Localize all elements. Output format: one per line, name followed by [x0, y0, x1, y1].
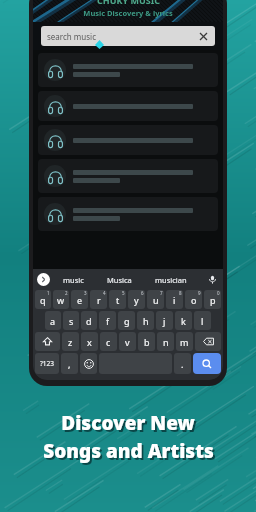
button[interactable]: j	[156, 311, 173, 330]
button[interactable]: musician	[151, 275, 191, 285]
button[interactable]	[38, 91, 218, 121]
button[interactable]: Musica	[103, 275, 136, 285]
button[interactable]: w	[53, 290, 69, 309]
staticText: 3	[84, 290, 87, 296]
button[interactable]: v	[119, 332, 136, 351]
button[interactable]: m	[176, 332, 193, 351]
staticText: .	[181, 358, 184, 370]
staticText: a	[50, 315, 56, 327]
staticText: 1	[47, 290, 50, 296]
staticText: ?123	[40, 359, 54, 368]
button[interactable]: r	[90, 290, 107, 309]
staticText: s	[69, 315, 74, 327]
button[interactable]: f	[99, 311, 116, 330]
button[interactable]: c	[100, 332, 117, 351]
staticText: 5	[122, 290, 125, 296]
button[interactable]: ?123	[35, 353, 59, 374]
staticText: CHUKY MUSIC	[97, 0, 160, 6]
staticText: d	[86, 315, 92, 327]
staticText: Discover New	[61, 410, 195, 436]
button[interactable]: i	[166, 290, 183, 309]
staticText: e	[77, 294, 83, 306]
staticText: q	[40, 294, 46, 306]
staticText: Songs and Artists	[45, 440, 216, 466]
staticText: musician	[155, 275, 187, 285]
staticText: o	[191, 294, 197, 306]
button[interactable]: y	[128, 290, 145, 309]
staticText: y	[134, 294, 139, 306]
button[interactable]: g	[118, 311, 135, 330]
staticText: g	[124, 315, 130, 327]
button[interactable]: e	[71, 290, 88, 309]
button[interactable]: .	[174, 353, 191, 374]
button[interactable]: Shift	[35, 332, 60, 351]
staticText: search music	[47, 31, 96, 42]
button[interactable]	[38, 197, 218, 231]
staticText: ,	[68, 358, 71, 370]
button[interactable]: x	[81, 332, 98, 351]
staticText: Discover New	[63, 412, 197, 438]
staticText: 2	[65, 290, 68, 296]
button[interactable]: Emoji	[80, 353, 97, 374]
staticText: 6	[141, 290, 144, 296]
button[interactable]: Backspace	[195, 332, 221, 351]
staticText: n	[163, 336, 169, 348]
button[interactable]	[38, 125, 218, 155]
button[interactable]: s	[63, 311, 79, 330]
staticText: w	[57, 294, 65, 306]
staticText: h	[143, 315, 149, 327]
button[interactable]: d	[81, 311, 97, 330]
staticText: p	[210, 294, 216, 306]
staticText: 4	[103, 290, 106, 296]
button[interactable]: t	[109, 290, 126, 309]
staticText: f	[106, 315, 110, 327]
staticText: Songs and Artists	[43, 438, 214, 464]
button[interactable]: Search	[193, 353, 221, 374]
staticText: r	[97, 294, 101, 306]
staticText: b	[144, 336, 150, 348]
button[interactable]: a	[45, 311, 61, 330]
button[interactable]	[38, 159, 218, 193]
button[interactable]: o	[185, 290, 202, 309]
button[interactable]: More suggestions	[37, 273, 50, 286]
button[interactable]: search music	[41, 26, 215, 46]
staticText: 9	[198, 290, 201, 296]
staticText: Music Discovery & lyrics	[83, 8, 173, 18]
button[interactable]: k	[175, 311, 192, 330]
staticText: 8	[179, 290, 182, 296]
button[interactable]: n	[157, 332, 174, 351]
button[interactable]: h	[137, 311, 154, 330]
staticText: u	[153, 294, 159, 306]
staticText: t	[116, 294, 120, 306]
button[interactable]: Voice input	[206, 273, 219, 286]
staticText: v	[125, 336, 130, 348]
staticText: z	[68, 336, 73, 348]
staticText: l	[201, 315, 204, 327]
button[interactable]: q	[35, 290, 51, 309]
staticText: x	[87, 336, 92, 348]
staticText: Musica	[107, 275, 132, 285]
button[interactable]: z	[62, 332, 79, 351]
button[interactable]: u	[147, 290, 164, 309]
button[interactable]: p	[204, 290, 221, 309]
staticText: 7	[160, 290, 163, 296]
button[interactable]: l	[194, 311, 211, 330]
staticText: m	[180, 336, 189, 348]
button[interactable]: Clear search	[197, 30, 209, 42]
button[interactable]	[38, 53, 218, 87]
staticText: music	[63, 275, 84, 285]
staticText: c	[106, 336, 111, 348]
staticText: j	[163, 315, 166, 327]
button[interactable]: music	[59, 275, 88, 285]
staticText: i	[173, 294, 176, 306]
staticText: 0	[217, 290, 220, 296]
button[interactable]: ,	[61, 353, 78, 374]
staticText: k	[181, 315, 186, 327]
button[interactable]: b	[138, 332, 155, 351]
